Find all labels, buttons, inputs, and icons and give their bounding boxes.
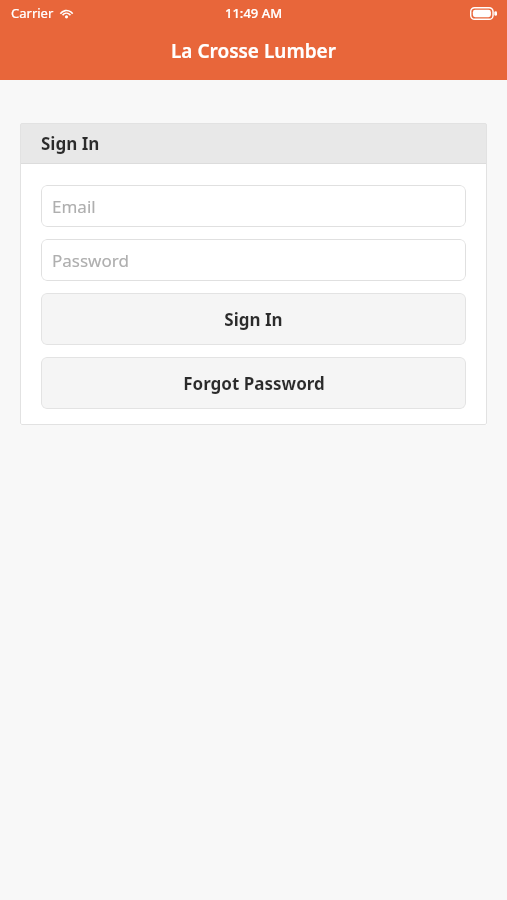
button[interactable]: Sign In <box>41 293 466 345</box>
staticText: Sign In <box>224 308 283 331</box>
staticText: 11:49 AM <box>225 4 283 22</box>
staticText: Forgot Password <box>183 372 325 395</box>
button[interactable]: Forgot Password <box>41 357 466 409</box>
staticText: Carrier <box>11 4 54 22</box>
button[interactable]: Email <box>41 185 466 227</box>
staticText: Password <box>52 249 129 272</box>
staticText: Sign In <box>41 132 100 155</box>
other: Wi-Fi signal <box>59 7 74 19</box>
staticText: La Crosse Lumber <box>171 38 336 64</box>
button[interactable]: Password <box>41 239 466 281</box>
other: Battery full <box>470 7 497 20</box>
staticText: Email <box>52 195 96 218</box>
